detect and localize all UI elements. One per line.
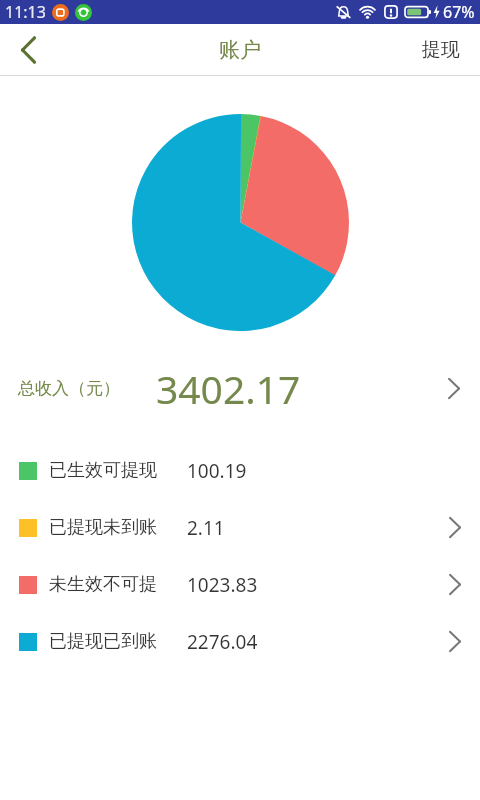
staticText: 1023.83	[187, 572, 258, 598]
button[interactable]	[6, 28, 50, 72]
button[interactable]: 提现	[414, 30, 468, 70]
staticText: 未生效不可提	[49, 573, 157, 596]
button[interactable]: 已生效可提现	[0, 442, 480, 499]
staticText: 提现	[422, 38, 460, 62]
staticText: 总收入（元）	[18, 378, 120, 399]
staticText: 100.19	[187, 458, 247, 484]
staticText: 已提现未到账	[49, 516, 157, 539]
staticText: 已生效可提现	[49, 459, 157, 482]
staticText: 2276.04	[187, 629, 258, 655]
staticText: 已提现已到账	[49, 630, 157, 653]
button[interactable]: 总收入（元）	[0, 358, 480, 418]
staticText: 67%	[443, 1, 475, 23]
staticText: 11:13	[5, 1, 46, 23]
button[interactable]: 已提现未到账	[0, 499, 480, 556]
button[interactable]: 未生效不可提	[0, 556, 480, 613]
staticText: 3402.17	[156, 362, 301, 415]
button[interactable]: 已提现已到账	[0, 613, 480, 670]
staticText: 账户	[219, 37, 261, 63]
staticText: 2.11	[187, 515, 225, 541]
